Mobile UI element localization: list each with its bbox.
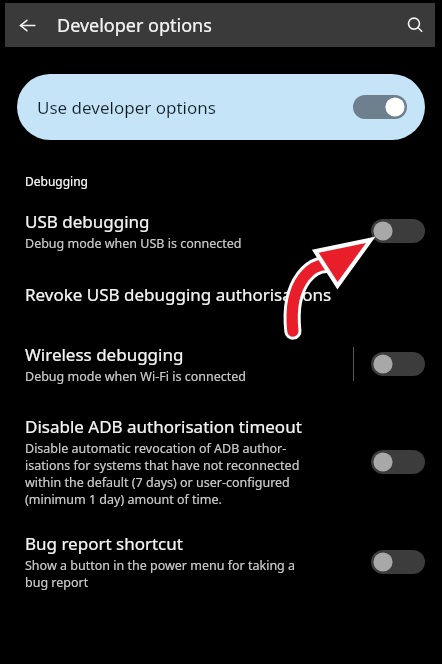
- staticText: Debugging: [25, 173, 88, 189]
- button[interactable]: USB debugging: [371, 219, 425, 243]
- button[interactable]: Bug report shortcut: [0, 532, 442, 591]
- staticText: Debug mode when USB is connected: [25, 235, 242, 252]
- button[interactable]: Disable ADB authorisation timeout: [371, 450, 425, 474]
- staticText: Bug report shortcut: [25, 532, 183, 555]
- staticText: Show a button in the power menu for taki…: [25, 557, 296, 574]
- staticText: Disable ADB authorisation timeout: [25, 415, 302, 438]
- staticText: isations for systems that have not recon…: [25, 457, 300, 474]
- staticText: Debug mode when Wi-Fi is connected: [25, 368, 246, 385]
- staticText: within the default (7 days) or user-conf…: [25, 474, 290, 491]
- button[interactable]: Wireless debugging: [371, 352, 425, 376]
- button[interactable]: Wireless debugging: [0, 343, 442, 385]
- button[interactable]: Revoke USB debugging authorisations: [0, 283, 442, 306]
- staticText: (minimum 1 day) amount of time.: [25, 491, 222, 508]
- button[interactable]: Bug report shortcut: [371, 550, 425, 574]
- staticText: Disable automatic revocation of ADB auth…: [25, 440, 287, 457]
- staticText: Developer options: [57, 13, 395, 38]
- button[interactable]: Search: [395, 5, 435, 45]
- staticText: Revoke USB debugging authorisations: [25, 283, 332, 306]
- staticText: Use developer options: [37, 96, 353, 119]
- staticText: Wireless debugging: [25, 343, 184, 366]
- staticText: USB debugging: [25, 210, 150, 233]
- button[interactable]: USB debugging: [0, 210, 442, 252]
- button[interactable]: Disable ADB authorisation timeout: [0, 415, 442, 508]
- button[interactable]: Back: [5, 3, 49, 47]
- button[interactable]: Use developer options: [17, 74, 425, 140]
- staticText: bug report: [25, 574, 89, 591]
